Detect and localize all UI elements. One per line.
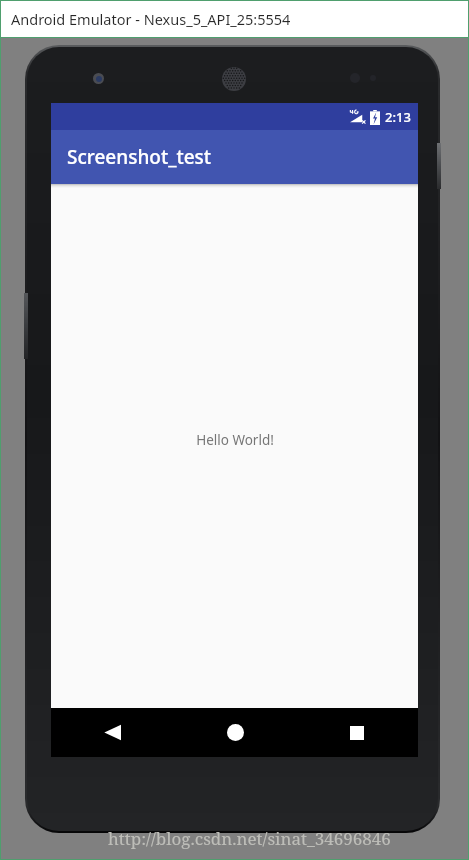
staticText: Hello World! xyxy=(196,431,274,449)
staticText: Android Emulator - Nexus_5_API_25:5554 xyxy=(11,9,291,29)
button[interactable]: Recent apps xyxy=(296,708,418,757)
staticText: 2:13 xyxy=(385,108,411,126)
staticText: Screenshot_test xyxy=(67,144,212,170)
button[interactable]: Home xyxy=(174,708,296,757)
button[interactable]: Back xyxy=(51,708,174,757)
staticText: http://blog.csdn.net/sinat_34696846 xyxy=(108,827,391,850)
